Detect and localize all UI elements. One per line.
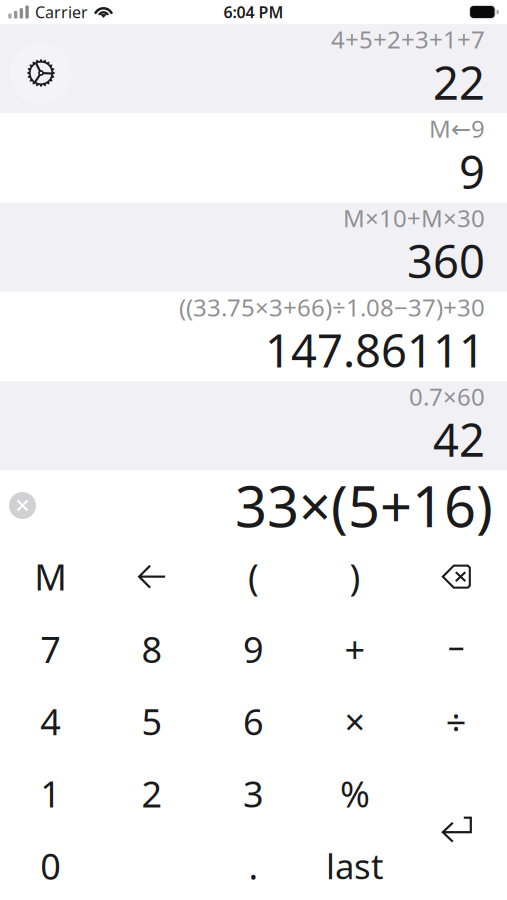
button[interactable]: × xyxy=(304,685,406,757)
staticText: M×10+M×30 xyxy=(343,202,485,234)
staticText: 1 xyxy=(40,770,61,817)
button[interactable]: last xyxy=(304,830,406,900)
staticText: ) xyxy=(349,553,360,600)
button[interactable]: Enter xyxy=(406,757,507,900)
staticText: ÷ xyxy=(446,697,467,745)
button[interactable]: % xyxy=(304,757,406,830)
button[interactable]: ) xyxy=(304,540,406,613)
button[interactable]: M×10+M×30 xyxy=(0,203,507,292)
staticText: . xyxy=(248,842,258,890)
button[interactable]: M←9 xyxy=(0,113,507,203)
button[interactable]: 8 xyxy=(101,613,203,685)
button[interactable]: ÷ xyxy=(406,685,507,757)
staticText: 4+5+2+3+1+7 xyxy=(331,23,485,55)
staticText: 9 xyxy=(243,625,264,673)
staticText: 22 xyxy=(433,52,485,112)
button[interactable]: 0 xyxy=(0,830,101,900)
button[interactable]: 9 xyxy=(203,613,304,685)
staticText: + xyxy=(344,625,365,673)
staticText: 2 xyxy=(142,770,163,817)
staticText: 7 xyxy=(40,625,61,673)
button[interactable]: 5 xyxy=(101,685,203,757)
staticText: 33×(5+16) xyxy=(235,468,493,543)
staticText: 4 xyxy=(40,697,61,745)
staticText: 6 xyxy=(243,697,264,745)
staticText: ( xyxy=(248,553,259,600)
button[interactable]: 7 xyxy=(0,613,101,685)
staticText: Carrier xyxy=(35,1,88,23)
staticText: 5 xyxy=(142,697,163,745)
button[interactable]: Clear xyxy=(0,492,36,519)
staticText: 42 xyxy=(433,409,485,469)
button[interactable]: + xyxy=(304,613,406,685)
staticText: 9 xyxy=(459,141,485,201)
staticText: M←9 xyxy=(429,113,485,144)
staticText: 3 xyxy=(243,770,264,817)
button[interactable]: Undo xyxy=(101,540,203,613)
staticText: 360 xyxy=(407,230,485,291)
button[interactable]: 0.7×60 xyxy=(0,381,507,470)
button[interactable]: 6 xyxy=(203,685,304,757)
staticText: ((33.75×3+66)÷1.08−37)+30 xyxy=(179,291,485,323)
button[interactable]: Delete xyxy=(406,540,507,613)
staticText: % xyxy=(340,770,370,817)
button[interactable]: 3 xyxy=(203,757,304,830)
button[interactable]: 2 xyxy=(101,757,203,830)
staticText: × xyxy=(344,697,365,745)
button[interactable]: . xyxy=(203,830,304,900)
staticText: 8 xyxy=(142,625,163,673)
button[interactable]: 4+5+2+3+1+7 xyxy=(0,24,507,113)
button[interactable]: M xyxy=(0,540,101,613)
button[interactable]: ((33.75×3+66)÷1.08−37)+30 xyxy=(0,292,507,381)
staticText: last xyxy=(326,843,384,889)
button[interactable]: 4 xyxy=(0,685,101,757)
button[interactable]: ( xyxy=(203,540,304,613)
staticText: 0.7×60 xyxy=(409,380,485,412)
staticText: 147.86111 xyxy=(265,320,485,380)
staticText: 0 xyxy=(40,842,61,890)
button[interactable]: Settings xyxy=(0,24,72,104)
staticText: 6:04 PM xyxy=(223,1,283,23)
button[interactable]: 1 xyxy=(0,757,101,830)
button[interactable]: Minus xyxy=(406,613,507,685)
staticText: M xyxy=(34,553,67,600)
